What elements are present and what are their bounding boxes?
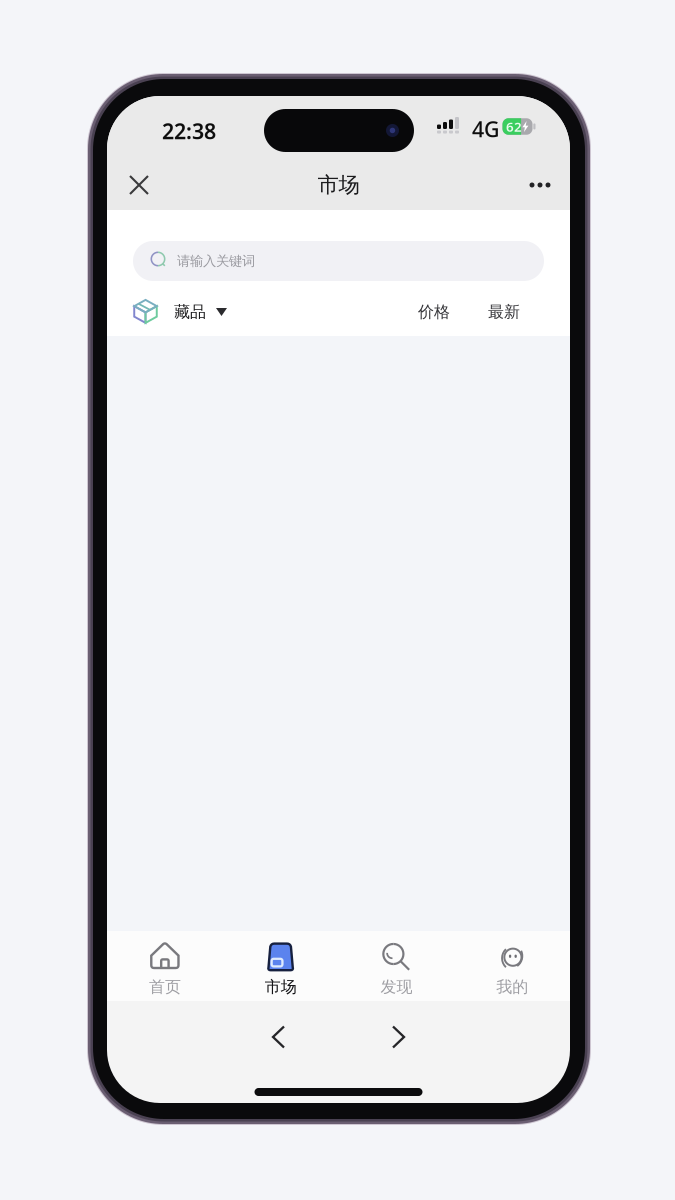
button[interactable]: 市场: [223, 931, 339, 1001]
staticText: 藏品: [174, 302, 206, 322]
button[interactable]: 价格: [408, 290, 460, 334]
button[interactable]: Close: [115, 161, 163, 209]
button[interactable]: 最新: [478, 290, 530, 334]
button[interactable]: 我的: [454, 931, 570, 1001]
staticText: 请输入关键词: [177, 253, 255, 269]
staticText: 22:38: [162, 117, 216, 145]
button[interactable]: 请输入关键词: [133, 241, 544, 281]
staticText: 价格: [418, 302, 450, 322]
staticText: 62: [506, 118, 522, 135]
staticText: 市场: [265, 977, 297, 997]
staticText: 最新: [488, 302, 520, 322]
button[interactable]: More options: [516, 161, 564, 209]
button[interactable]: Forward: [375, 1014, 421, 1060]
button[interactable]: 发现: [338, 931, 454, 1001]
button[interactable]: 藏品: [131, 290, 241, 334]
button[interactable]: 首页: [107, 931, 223, 1001]
staticText: 首页: [149, 977, 181, 997]
staticText: 4G: [472, 115, 500, 143]
staticText: 我的: [496, 977, 528, 997]
staticText: 发现: [380, 977, 412, 997]
button[interactable]: Back: [255, 1014, 301, 1060]
staticText: 市场: [317, 172, 359, 198]
